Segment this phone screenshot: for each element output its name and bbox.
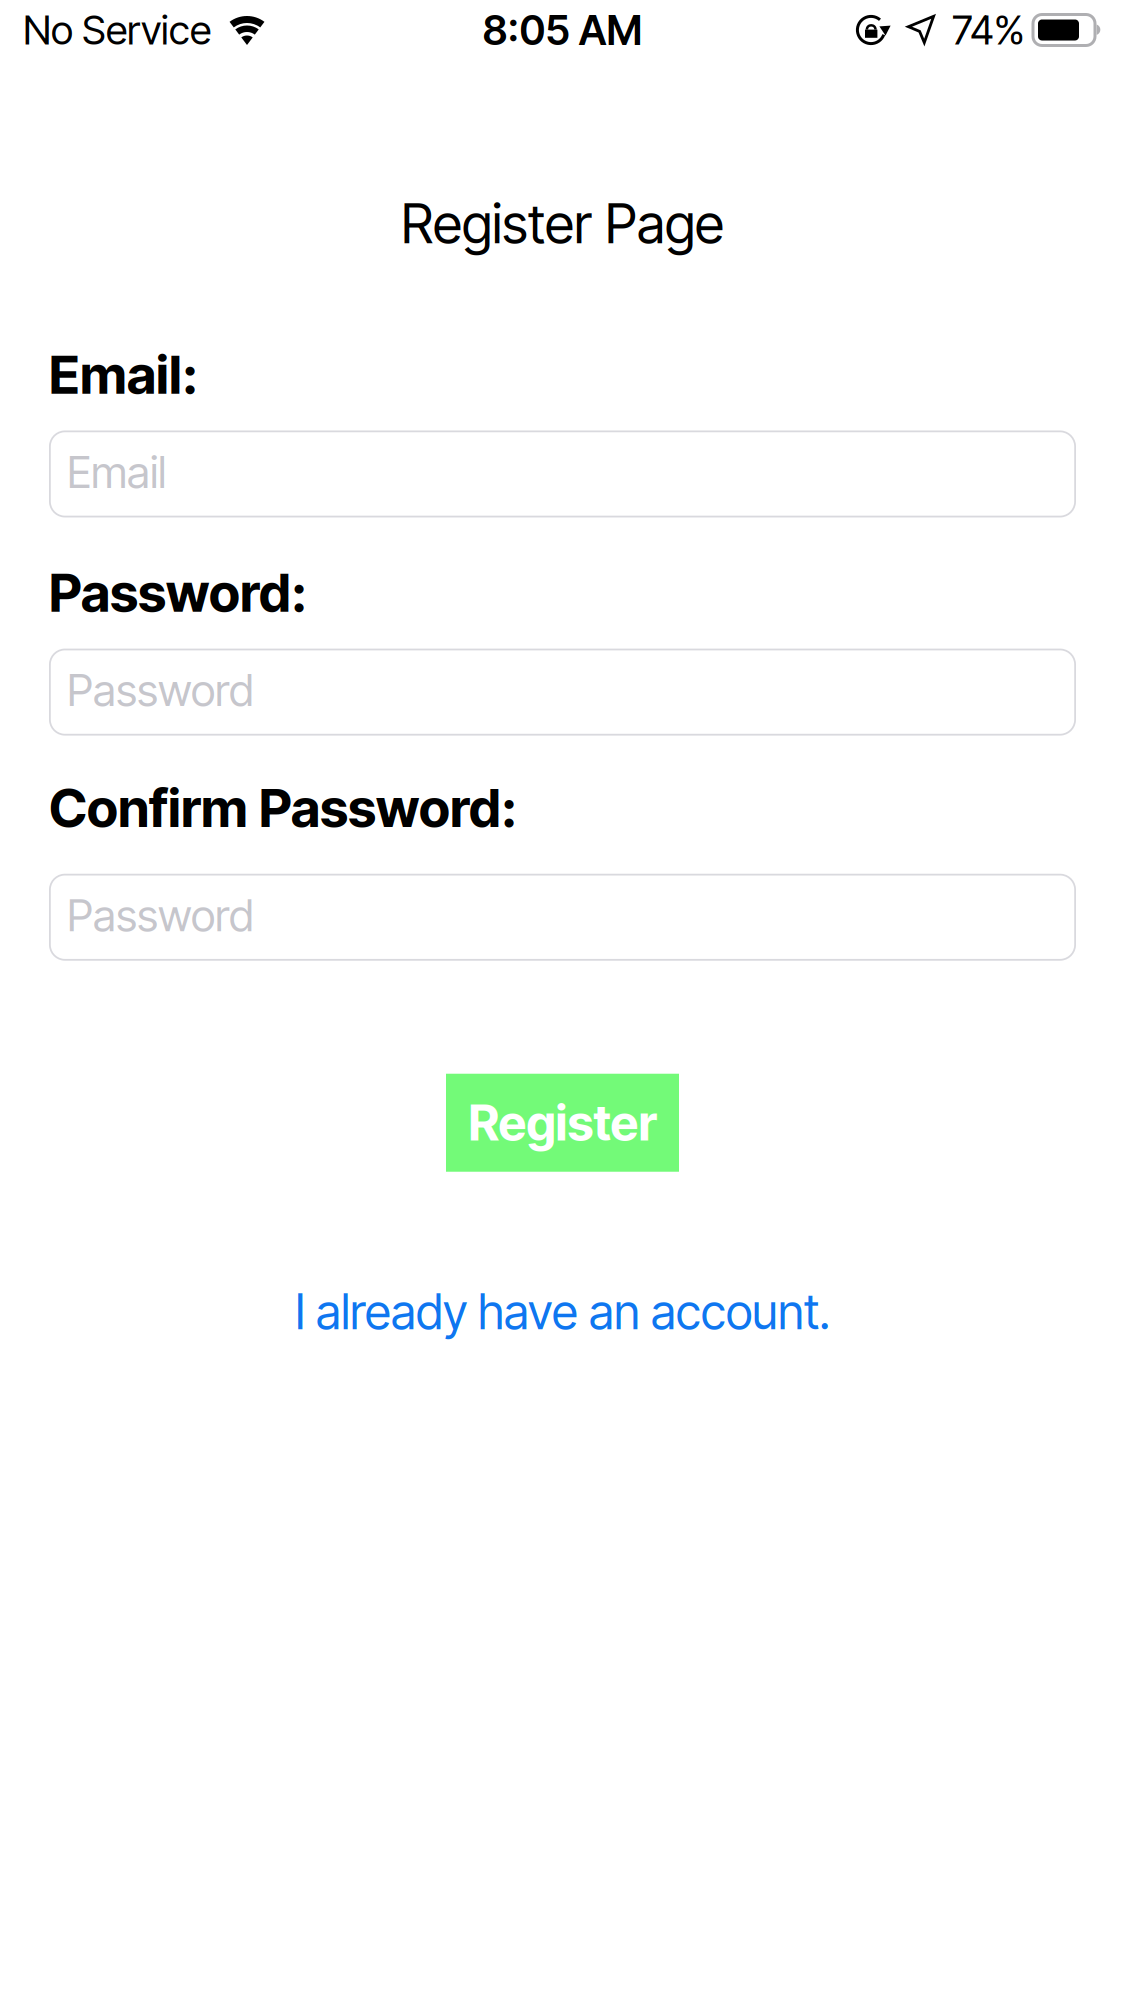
staticText: Password [67,663,254,717]
staticText: No Service [23,6,211,54]
button[interactable]: I already have an account. [295,1283,830,1341]
staticText: Password: [49,560,307,625]
staticText: Register Page [401,191,724,256]
staticText: 74% [952,6,1025,54]
staticText: 8:05 AM [482,5,642,55]
staticText: Register [468,1093,656,1152]
staticText: Email [67,445,166,498]
staticText: Email: [49,342,198,406]
staticText: Password [67,889,254,942]
staticText: I already have an account. [295,1283,830,1341]
button[interactable]: Register [446,1074,679,1172]
staticText: Confirm Password: [49,776,517,840]
